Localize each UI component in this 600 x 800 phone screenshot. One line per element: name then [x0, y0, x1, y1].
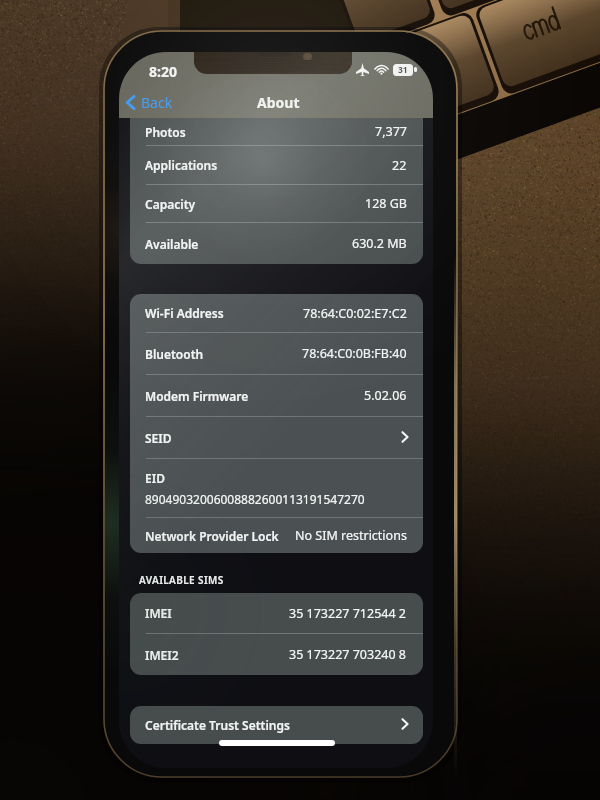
- staticText: IMEI2: [145, 647, 179, 663]
- staticText: Wi-Fi Address: [145, 305, 224, 321]
- staticText: Available: [145, 236, 199, 252]
- staticText: 630.2 MB: [352, 235, 407, 252]
- other: Wi-Fi connected: [375, 63, 388, 76]
- staticText: Back: [141, 93, 173, 112]
- staticText: Bluetooth: [145, 346, 204, 362]
- staticText: 7,377: [375, 123, 407, 140]
- staticText: SEID: [145, 430, 172, 446]
- button[interactable]: IMEI: [130, 593, 423, 633]
- button[interactable]: IMEI2: [130, 634, 423, 675]
- staticText: Modem Firmware: [145, 388, 249, 404]
- other: Battery 31 percent: [393, 64, 413, 76]
- button[interactable]: Certificate Trust Settings: [130, 706, 423, 744]
- staticText: 22: [392, 157, 407, 174]
- staticText: Certificate Trust Settings: [145, 717, 290, 733]
- button[interactable]: EID: [130, 459, 423, 517]
- staticText: Photos: [145, 124, 186, 140]
- button[interactable]: Available: [130, 223, 423, 264]
- staticText: 35 173227 712544 2: [289, 605, 407, 622]
- staticText: 78:64:C0:02:E7:C2: [303, 305, 407, 322]
- staticText: 5.02.06: [364, 387, 407, 404]
- staticText: Capacity: [145, 196, 196, 212]
- button[interactable]: Bluetooth: [130, 333, 423, 374]
- staticText: Network Provider Lock: [145, 528, 279, 544]
- staticText: EID: [145, 470, 165, 486]
- button[interactable]: Wi-Fi Address: [130, 294, 423, 332]
- other: Airplane mode on: [356, 63, 369, 76]
- staticText: 78:64:C0:0B:FB:40: [302, 345, 407, 362]
- staticText: 128 GB: [365, 195, 407, 212]
- staticText: 89049032006008882600113191547270: [145, 491, 365, 507]
- button[interactable]: Network Provider Lock: [130, 518, 423, 553]
- button[interactable]: Back: [124, 89, 179, 115]
- button[interactable]: SEID: [130, 417, 423, 458]
- button[interactable]: Applications: [130, 146, 423, 184]
- staticText: 31: [398, 64, 408, 76]
- staticText: Applications: [145, 157, 218, 173]
- staticText: No SIM restrictions: [295, 527, 407, 544]
- staticText: IMEI: [145, 605, 172, 621]
- button[interactable]: Photos: [130, 118, 423, 145]
- button[interactable]: Capacity: [130, 185, 423, 222]
- staticText: 35 173227 703240 8: [289, 646, 407, 663]
- button[interactable]: Modem Firmware: [130, 375, 423, 416]
- staticText: 8:20: [149, 62, 177, 81]
- staticText: About: [257, 93, 300, 112]
- staticText: AVAILABLE SIMS: [139, 573, 224, 587]
